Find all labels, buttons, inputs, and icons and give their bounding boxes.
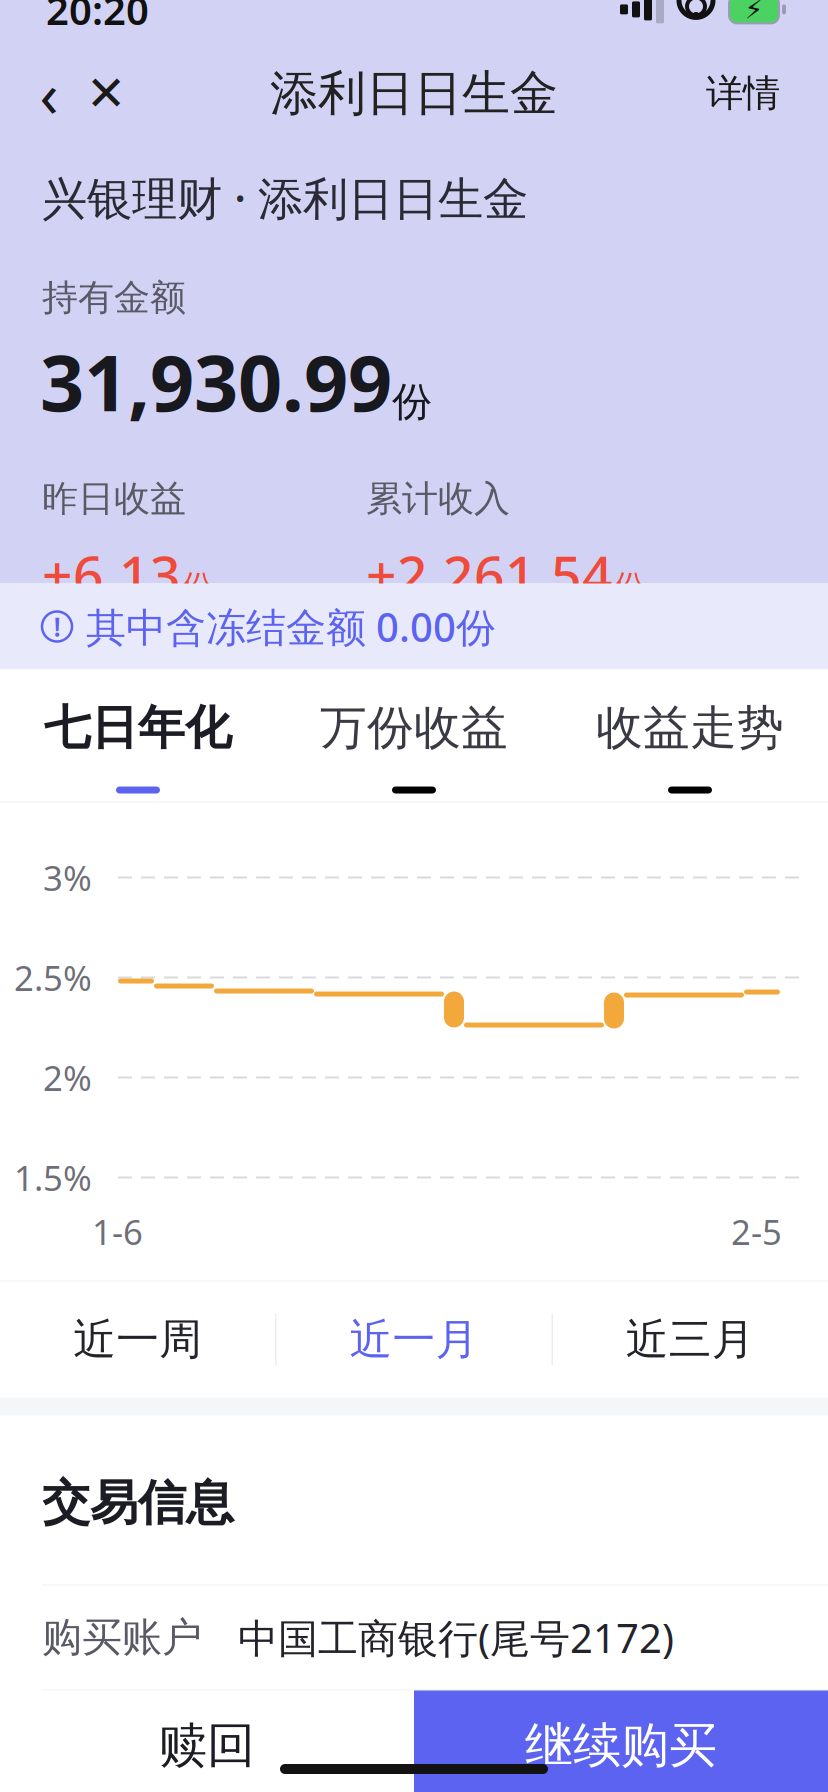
staticText: ⚡︎ <box>744 0 763 25</box>
staticText: +6.13 <box>42 539 181 610</box>
button[interactable]: 近三月 <box>553 1281 828 1397</box>
staticText: ! <box>53 609 60 644</box>
staticText: ‹ <box>39 53 58 134</box>
button[interactable]: 详情 <box>696 56 790 130</box>
staticText: +2,261.54 <box>366 539 613 610</box>
staticText: 份 <box>392 377 432 426</box>
button[interactable]: 近一月 <box>276 1281 552 1397</box>
staticText: 兴银理财 · 添利日日生金 <box>42 167 528 228</box>
staticText: 收益走势 <box>596 699 784 757</box>
staticText: 持有金额 <box>42 276 186 320</box>
staticText: 1.5% <box>14 1154 92 1200</box>
staticText: 添利日日生金 <box>270 64 558 123</box>
staticText: 份 <box>181 567 213 607</box>
staticText: 3% <box>43 854 92 900</box>
staticText: ✕ <box>86 66 126 121</box>
button[interactable]: 收益走势 <box>552 669 828 801</box>
staticText: 近三月 <box>626 1313 755 1366</box>
staticText: 近一周 <box>73 1313 202 1366</box>
staticText: 2% <box>43 1054 92 1100</box>
staticText: 份 <box>613 567 645 607</box>
button[interactable]: 赎回 <box>0 1690 414 1792</box>
staticText: 购买账户 <box>42 1613 202 1662</box>
staticText: 其中含冻结金额 0.00份 <box>86 600 496 653</box>
staticText: 20:20 <box>46 0 149 36</box>
staticText: 交易信息 <box>42 1473 234 1532</box>
button[interactable]: 近一周 <box>0 1281 275 1397</box>
staticText: 万份收益 <box>320 699 508 757</box>
staticText: 近一月 <box>349 1313 478 1366</box>
button[interactable]: 返回 <box>22 56 76 130</box>
button[interactable]: 继续购买 <box>414 1690 828 1792</box>
staticText: 31,930.99 <box>40 330 392 432</box>
staticText: 2.5% <box>14 954 92 1000</box>
staticText: 昨日收益 <box>42 476 186 521</box>
staticText: 七日年化 <box>44 699 232 757</box>
staticText: 赎回 <box>159 1716 255 1775</box>
staticText: 详情 <box>706 70 780 116</box>
staticText: 1-6 <box>92 1208 143 1254</box>
staticText: 累计收入 <box>366 476 510 521</box>
button[interactable]: 关闭 <box>76 56 136 130</box>
staticText: 中国工商银行(尾号2172) <box>238 1611 674 1664</box>
staticText: 2-5 <box>731 1208 782 1254</box>
staticText: 继续购买 <box>525 1716 717 1775</box>
button[interactable]: 七日年化 <box>0 669 276 801</box>
button[interactable]: 万份收益 <box>276 669 552 801</box>
